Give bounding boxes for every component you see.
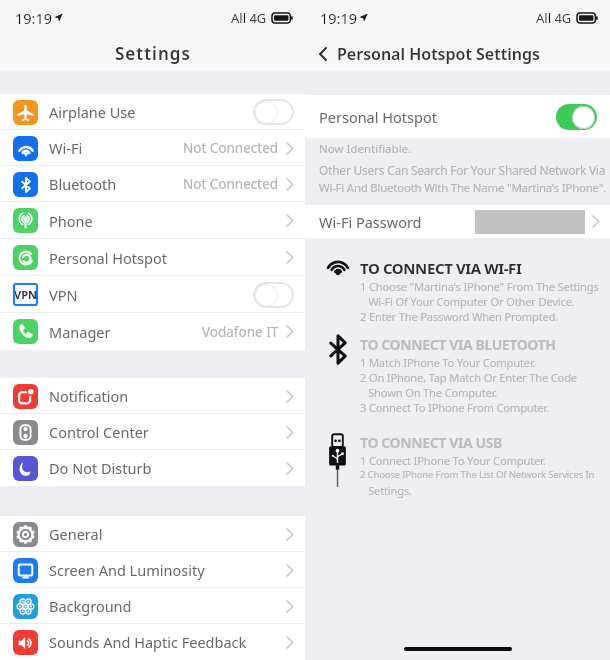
staticText: 2 On IPhone, Tap Match Or Enter The Code (360, 370, 577, 385)
button[interactable]: Airplane Use (0, 94, 305, 130)
button[interactable]: Personal Hotspot (0, 239, 305, 276)
staticText: 1 Choose "Martina's IPhone" From The Set… (360, 279, 599, 294)
staticText: 19:19 (15, 8, 53, 28)
button[interactable]: Sounds And Haptic Feedback (0, 624, 305, 660)
button[interactable]: General (0, 516, 305, 552)
button[interactable]: Phone (0, 202, 305, 239)
staticText: Personal Hotspot Settings (337, 43, 540, 65)
staticText: TO CONNECT VIA WI-FI (360, 258, 522, 278)
staticText: Not Connected (183, 175, 279, 193)
staticText: Wi-Fi (49, 138, 83, 158)
staticText: 1 Connect IPhone To Your Computer. (360, 453, 546, 468)
staticText: 2 Choose IPhone From The List Of Network… (360, 468, 610, 481)
staticText: Screen And Luminosity (49, 560, 205, 580)
button[interactable]: Personal Hotspot (305, 95, 610, 138)
staticText: General (49, 524, 103, 544)
staticText: Manager (49, 322, 111, 342)
staticText: 3 Connect To IPhone From Computer. (360, 400, 549, 415)
button[interactable]: Do Not Disturb (0, 450, 305, 486)
staticText: Bluetooth (49, 174, 117, 194)
button[interactable]: Wi-Fi Password (305, 205, 610, 238)
staticText: 1 Match IPhone To Your Computer. (360, 355, 536, 370)
button[interactable]: Background (0, 588, 305, 624)
button[interactable]: Toggle off (253, 282, 294, 308)
button[interactable]: Bluetooth (0, 166, 305, 202)
staticText: Other Users Can Search For Your Shared N… (319, 162, 606, 178)
staticText: Now Identifiable. (319, 141, 412, 157)
button[interactable]: Wi-Fi (0, 130, 305, 166)
staticText: Notification (49, 386, 129, 406)
staticText: VPN (14, 287, 37, 302)
staticText: Control Center (49, 422, 149, 442)
button[interactable]: Notification (0, 378, 305, 414)
staticText: All 4G (231, 9, 267, 27)
button[interactable]: Toggle on (556, 104, 597, 130)
button[interactable]: Back (316, 44, 330, 64)
staticText: Shown On The Computer. (360, 385, 498, 400)
staticText: Wi-Fi And Bluetooth With The Name "Marti… (319, 180, 607, 196)
staticText: Phone (49, 211, 93, 231)
staticText: Sounds And Haptic Feedback (49, 632, 247, 652)
button[interactable]: VPN (0, 276, 305, 313)
staticText: VPN (49, 285, 78, 305)
staticText: All 4G (536, 9, 572, 27)
staticText: Airplane Use (49, 102, 136, 122)
staticText: Settings (115, 42, 191, 65)
button[interactable]: Control Center (0, 414, 305, 450)
button[interactable]: Manager (0, 313, 305, 350)
staticText: Settings. (360, 483, 412, 498)
staticText: Do Not Disturb (49, 458, 152, 478)
button[interactable]: Screen And Luminosity (0, 552, 305, 588)
staticText: TO CONNECT VIA USB (360, 433, 502, 452)
staticText: Personal Hotspot (49, 248, 167, 268)
staticText: Background (49, 596, 132, 616)
staticText: 19:19 (320, 8, 358, 28)
staticText: 2 Enter The Password When Prompted. (360, 309, 559, 324)
staticText: Vodafone IT (202, 323, 279, 341)
staticText: Not Connected (183, 139, 279, 157)
staticText: Personal Hotspot (319, 107, 437, 127)
staticText: TO CONNECT VIA BLUETOOTH (360, 335, 556, 354)
staticText: Wi-Fi Of Your Computer Or Other Device. (360, 294, 575, 309)
button[interactable]: Toggle off (253, 99, 294, 125)
staticText: Wi-Fi Password (319, 212, 422, 232)
